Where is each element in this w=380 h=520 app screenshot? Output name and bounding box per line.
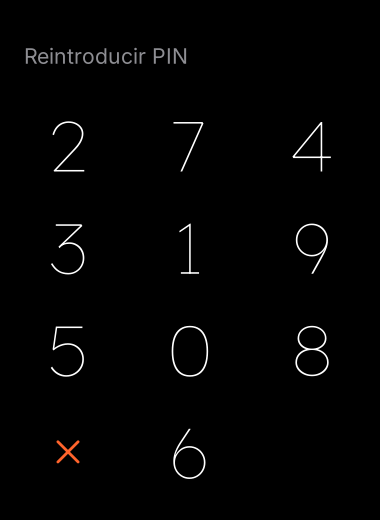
button[interactable]: 9 bbox=[251, 196, 373, 298]
staticText: 0 bbox=[168, 305, 212, 394]
button[interactable]: 5 bbox=[7, 298, 129, 401]
staticText: 5 bbox=[48, 305, 88, 394]
button[interactable]: 7 bbox=[129, 94, 251, 196]
staticText: 4 bbox=[290, 101, 334, 189]
button[interactable]: 6 bbox=[129, 401, 251, 503]
staticText: 9 bbox=[292, 203, 331, 291]
staticText: 3 bbox=[49, 203, 86, 291]
button[interactable]: 8 bbox=[251, 298, 373, 401]
button[interactable]: 0 bbox=[129, 298, 251, 401]
staticText: Reintroducir PIN bbox=[24, 43, 188, 69]
button[interactable]: Delete bbox=[7, 401, 129, 503]
staticText: 1 bbox=[176, 203, 203, 291]
staticText: 7 bbox=[173, 101, 206, 189]
staticText: 6 bbox=[168, 408, 211, 496]
button[interactable]: 1 bbox=[129, 196, 251, 298]
button[interactable]: 4 bbox=[251, 94, 373, 196]
button[interactable]: 2 bbox=[7, 94, 129, 196]
staticText: 2 bbox=[48, 101, 87, 189]
button[interactable]: 3 bbox=[7, 196, 129, 298]
staticText: 8 bbox=[291, 305, 332, 394]
